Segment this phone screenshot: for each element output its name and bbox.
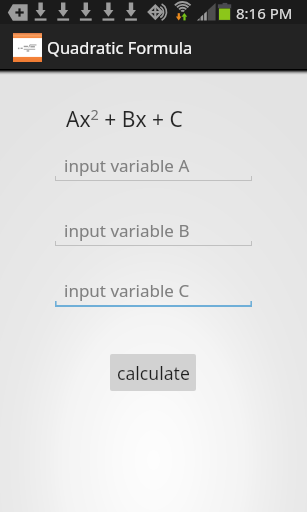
button[interactable]: calculate <box>110 354 196 391</box>
staticText: input variable C <box>64 279 190 302</box>
button[interactable]: input variable A <box>55 155 252 182</box>
button[interactable]: input variable B <box>55 220 252 247</box>
staticText: 8:16 PM <box>236 3 293 23</box>
staticText: input variable B <box>64 219 190 242</box>
staticText: calculate <box>117 361 190 385</box>
staticText: Quadratic Formula <box>47 36 193 58</box>
staticText: input variable A <box>64 154 190 177</box>
staticText: Ax2 + Bx + C <box>66 104 183 133</box>
button[interactable]: input variable C <box>55 280 252 307</box>
